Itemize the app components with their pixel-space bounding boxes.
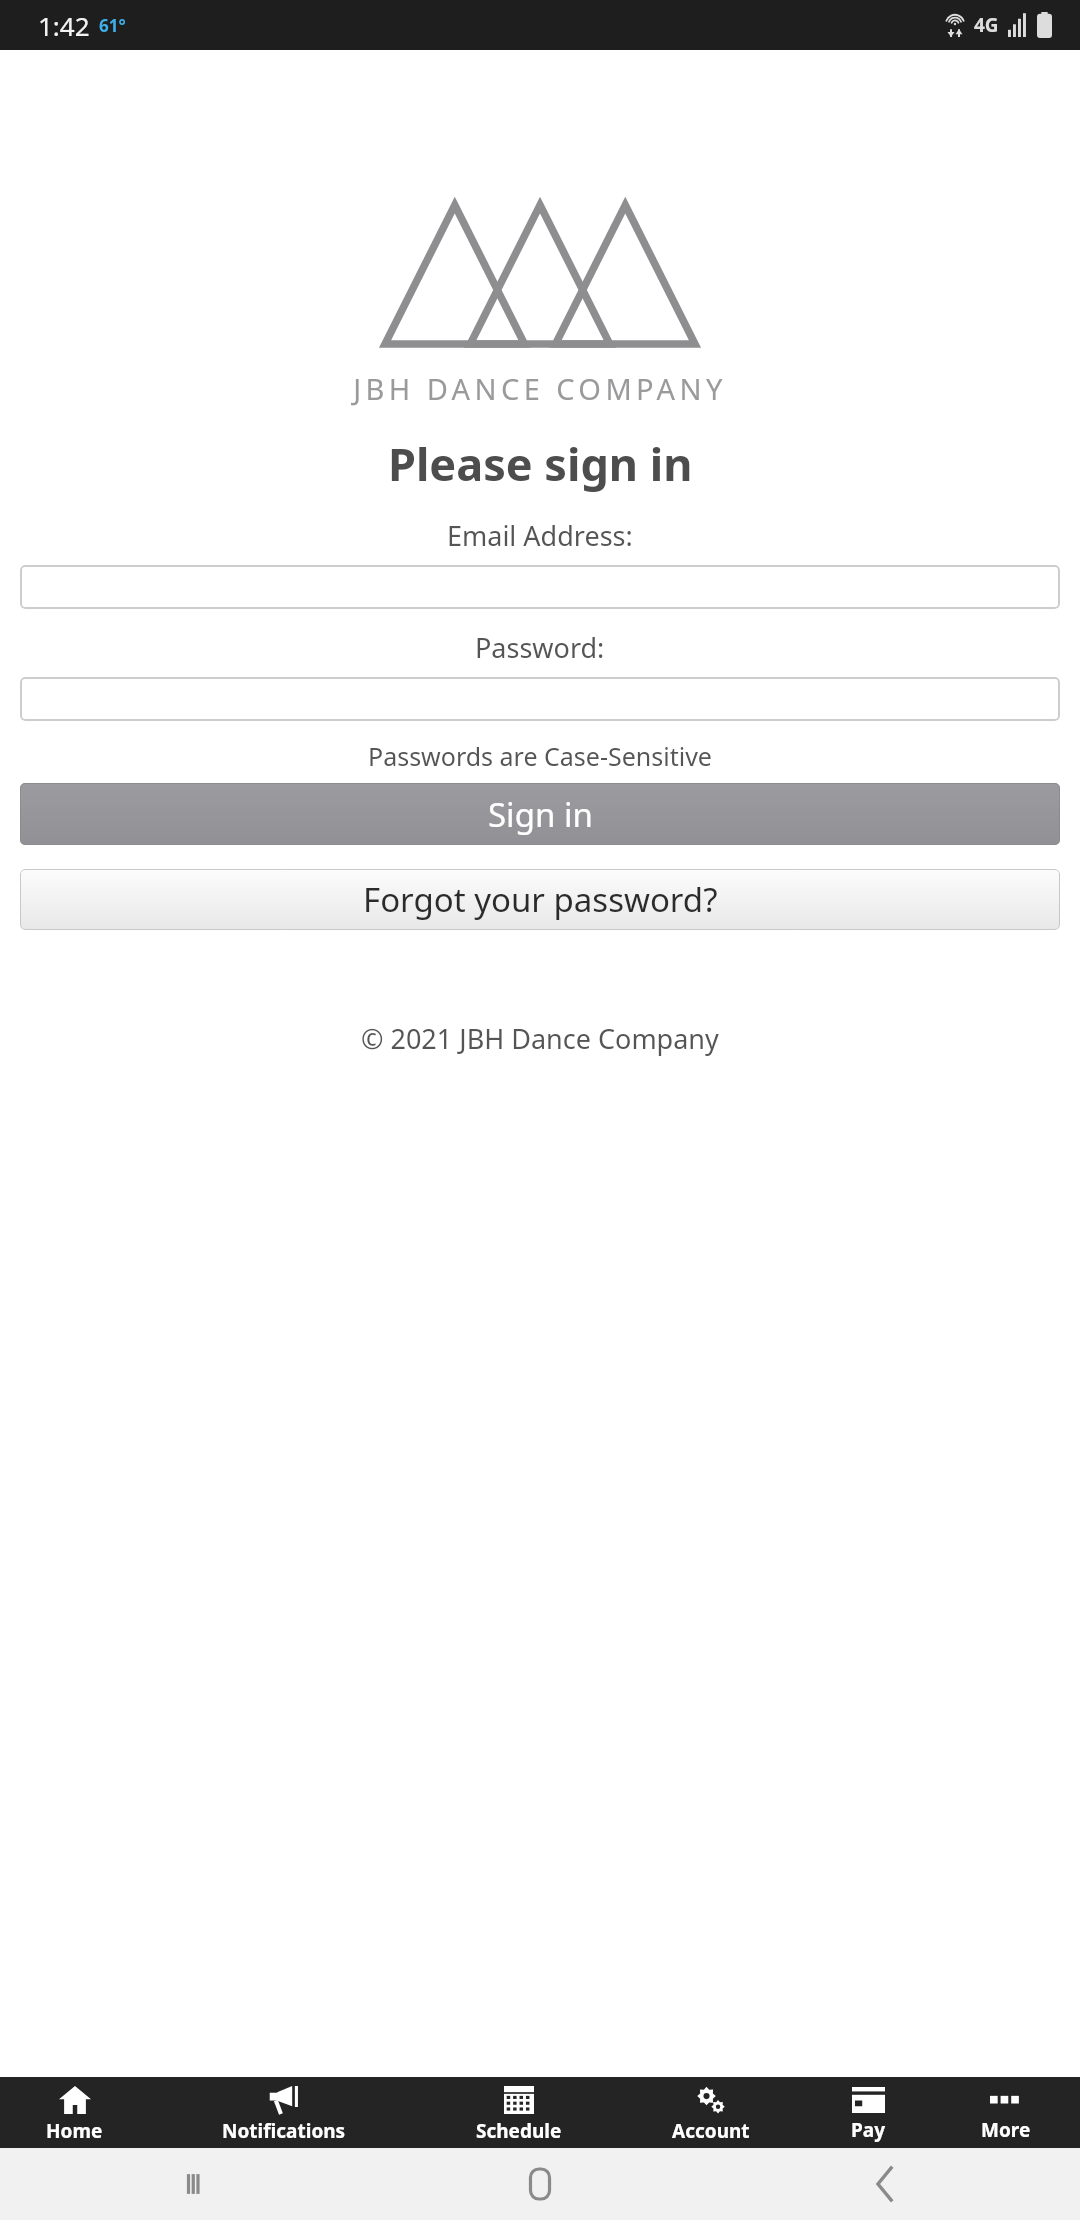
button[interactable]: Forgot your password? [20, 869, 1060, 930]
button[interactable]: Home [0, 2077, 149, 2148]
button[interactable]: Home [510, 2154, 570, 2214]
staticText: Schedule [476, 2118, 562, 2144]
staticText: Home [46, 2118, 103, 2144]
button[interactable]: Account [618, 2077, 804, 2148]
staticText: Account [672, 2118, 750, 2144]
staticText: Email Address: [447, 517, 633, 554]
staticText: JBH DANCE COMPANY [353, 369, 727, 408]
button[interactable]: Recents [165, 2154, 225, 2214]
button[interactable]: Notifications [149, 2077, 419, 2148]
staticText: Password: [475, 629, 605, 666]
button[interactable] [20, 565, 1060, 609]
staticText: Passwords are Case-Sensitive [368, 739, 712, 773]
button[interactable]: More [932, 2077, 1080, 2148]
button[interactable] [20, 677, 1060, 721]
staticText: 61° [99, 14, 126, 37]
button[interactable]: Back [855, 2154, 915, 2214]
staticText: 4G [974, 12, 999, 38]
staticText: Notifications [222, 2118, 346, 2144]
staticText: © 2021 JBH Dance Company [361, 1020, 719, 1057]
staticText: Please sign in [388, 433, 693, 494]
button[interactable]: Schedule [419, 2077, 618, 2148]
button[interactable]: Sign in [20, 783, 1060, 845]
staticText: 1:42 [38, 8, 90, 43]
staticText: Sign in [488, 792, 593, 837]
staticText: More [981, 2117, 1031, 2143]
staticText: Forgot your password? [363, 877, 718, 922]
staticText: Pay [851, 2117, 886, 2143]
button[interactable]: Pay [804, 2077, 932, 2148]
